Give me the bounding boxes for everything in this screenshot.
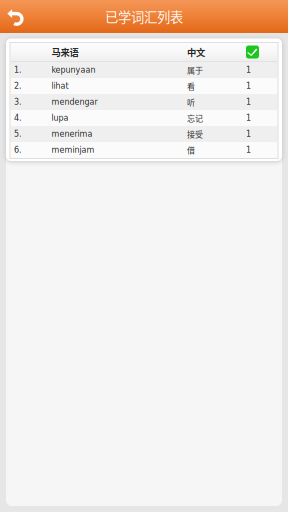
staticText: 1	[246, 129, 251, 139]
button[interactable]: 6.	[10, 142, 277, 158]
staticText: 1	[246, 145, 251, 155]
staticText: meminjam	[51, 145, 94, 155]
staticText: 1.	[14, 65, 22, 75]
staticText: 接受	[187, 128, 203, 140]
staticText: lupa	[51, 113, 68, 123]
staticText: 1	[246, 81, 251, 91]
button[interactable]: 2.	[10, 78, 277, 94]
staticText: 6.	[14, 145, 22, 155]
staticText: 2.	[14, 81, 22, 91]
button[interactable]: 4.	[10, 110, 277, 126]
staticText: 1	[246, 97, 251, 107]
staticText: 看	[187, 80, 195, 92]
staticText: 马来语	[51, 45, 78, 59]
staticText: 3.	[14, 97, 22, 107]
staticText: 1	[246, 65, 251, 75]
staticText: kepunyaan	[51, 65, 95, 75]
staticText: 已学词汇列表	[105, 7, 183, 26]
button[interactable]: 5.	[10, 126, 277, 142]
staticText: mendengar	[51, 97, 97, 107]
staticText: 5.	[14, 129, 22, 139]
staticText: 听	[187, 96, 195, 108]
staticText: 中文	[187, 45, 205, 59]
staticText: 属于	[187, 64, 203, 76]
staticText: 忘记	[187, 112, 203, 124]
staticText: lihat	[51, 81, 68, 91]
staticText: 借	[187, 144, 195, 156]
staticText: 4.	[14, 113, 22, 123]
button[interactable]: 1.	[10, 62, 277, 78]
button[interactable]: 3.	[10, 94, 277, 110]
button[interactable]: Back	[0, 0, 32, 33]
staticText: 1	[246, 113, 251, 123]
staticText: menerima	[51, 129, 92, 139]
